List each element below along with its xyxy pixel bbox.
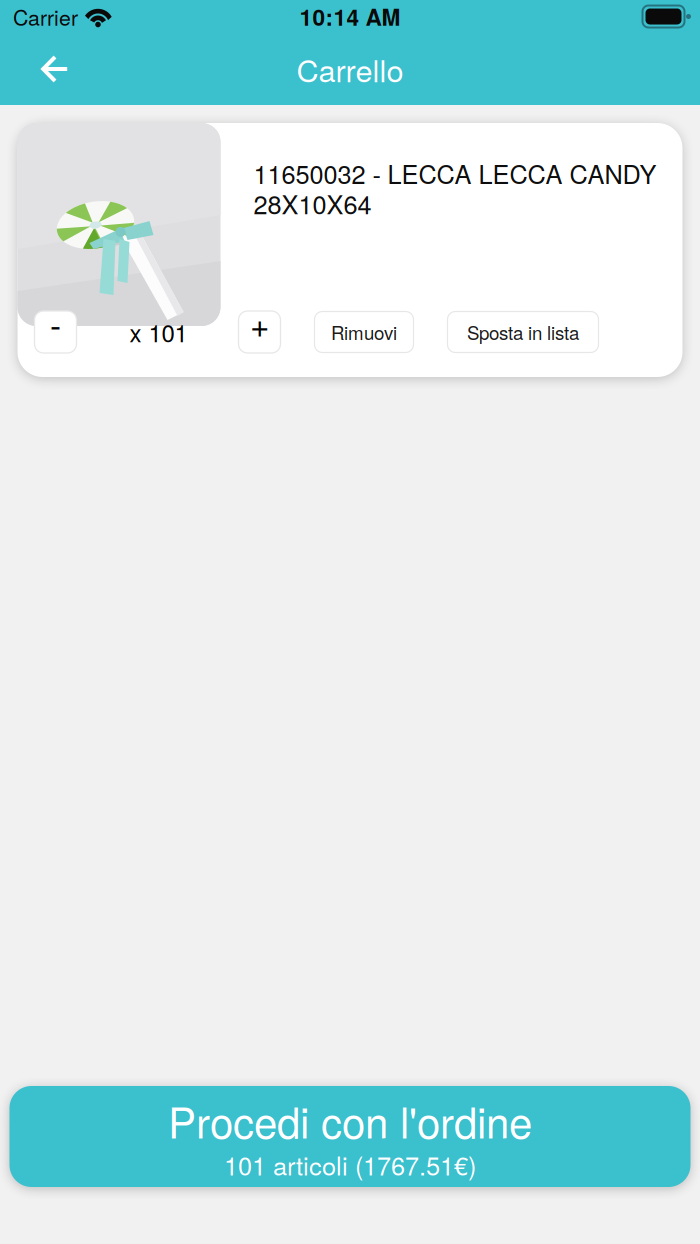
staticText: +: [250, 299, 269, 347]
staticText: -: [50, 299, 61, 347]
staticText: Carrier: [13, 1, 78, 32]
staticText: x 101: [129, 315, 187, 349]
button[interactable]: Procedi con l'ordine: [9, 1086, 690, 1187]
button[interactable]: Increase quantity: [238, 311, 280, 353]
button[interactable]: Sposta in lista: [447, 311, 598, 352]
staticText: Sposta in lista: [467, 319, 579, 345]
staticText: 11650032 - LECCA LECCA CANDY: [253, 155, 656, 191]
staticText: 28X10X64: [253, 185, 371, 222]
button[interactable]: Decrease quantity: [34, 311, 76, 353]
staticText: 101 articoli (1767.51€): [224, 1146, 476, 1183]
staticText: 10:14 AM: [299, 0, 400, 33]
button[interactable]: Back: [27, 41, 83, 97]
staticText: Rimuovi: [331, 319, 397, 345]
staticText: Carrello: [296, 47, 403, 91]
button[interactable]: Rimuovi: [314, 311, 413, 352]
staticText: Procedi con l'ordine: [168, 1090, 532, 1150]
